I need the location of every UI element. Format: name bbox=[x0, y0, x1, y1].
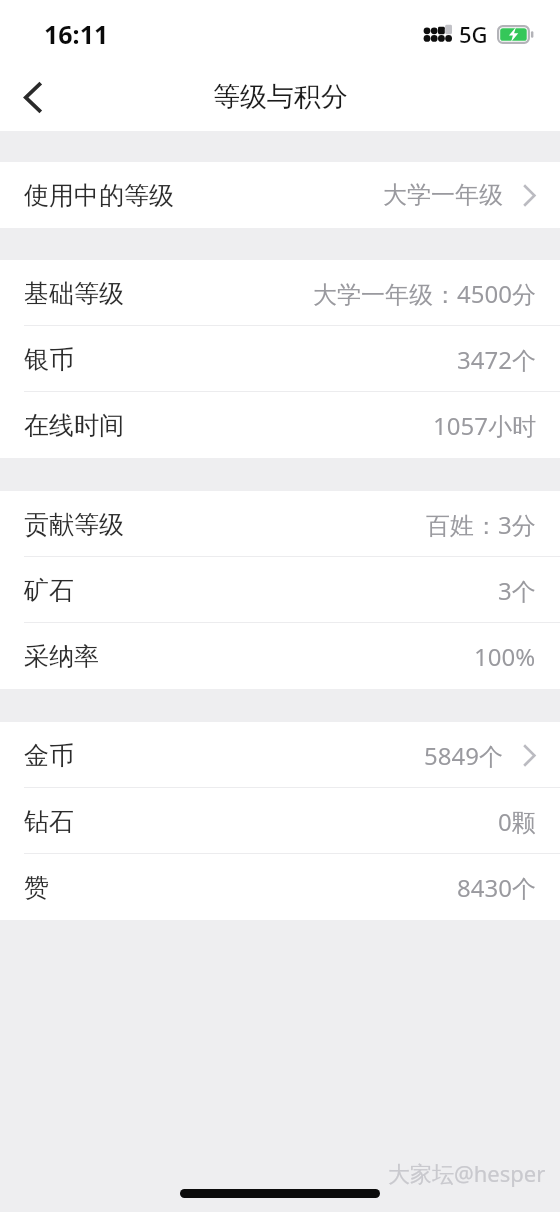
staticText: 等级与积分 bbox=[213, 80, 348, 114]
staticText: 大学一年级：4500分 bbox=[313, 277, 536, 310]
staticText: 使用中的等级 bbox=[24, 180, 174, 211]
staticText: 赞 bbox=[24, 872, 49, 903]
staticText: 100% bbox=[474, 640, 536, 673]
staticText: 0颗 bbox=[498, 805, 536, 838]
button[interactable]: 银币 bbox=[0, 326, 560, 392]
staticText: 钻石 bbox=[24, 806, 74, 837]
staticText: 3个 bbox=[498, 574, 536, 607]
staticText: 百姓：3分 bbox=[426, 508, 536, 541]
staticText: 1057小时 bbox=[433, 409, 536, 442]
button[interactable]: 使用中的等级 bbox=[0, 162, 560, 228]
staticText: 贡献等级 bbox=[24, 509, 124, 540]
staticText: 银币 bbox=[24, 344, 74, 375]
staticText: 矿石 bbox=[24, 575, 74, 606]
staticText: 5849个 bbox=[424, 739, 503, 772]
staticText: 16:11 bbox=[44, 17, 109, 51]
staticText: 大学一年级 bbox=[383, 180, 503, 210]
staticText: 5G bbox=[459, 19, 488, 49]
button[interactable]: 钻石 bbox=[0, 788, 560, 854]
button[interactable]: 赞 bbox=[0, 854, 560, 920]
staticText: 基础等级 bbox=[24, 278, 124, 309]
button[interactable]: Back bbox=[0, 64, 66, 130]
button[interactable]: 金币 bbox=[0, 722, 560, 788]
button[interactable]: 基础等级 bbox=[0, 260, 560, 326]
staticText: 在线时间 bbox=[24, 410, 124, 441]
button[interactable]: 在线时间 bbox=[0, 392, 560, 458]
staticText: 3472个 bbox=[457, 343, 536, 376]
button[interactable]: 采纳率 bbox=[0, 623, 560, 689]
button[interactable]: 矿石 bbox=[0, 557, 560, 623]
staticText: 金币 bbox=[24, 740, 74, 771]
button[interactable]: 贡献等级 bbox=[0, 491, 560, 557]
staticText: 采纳率 bbox=[24, 641, 99, 672]
staticText: 8430个 bbox=[457, 871, 536, 904]
staticText: 大家坛@hesper bbox=[388, 1158, 546, 1188]
